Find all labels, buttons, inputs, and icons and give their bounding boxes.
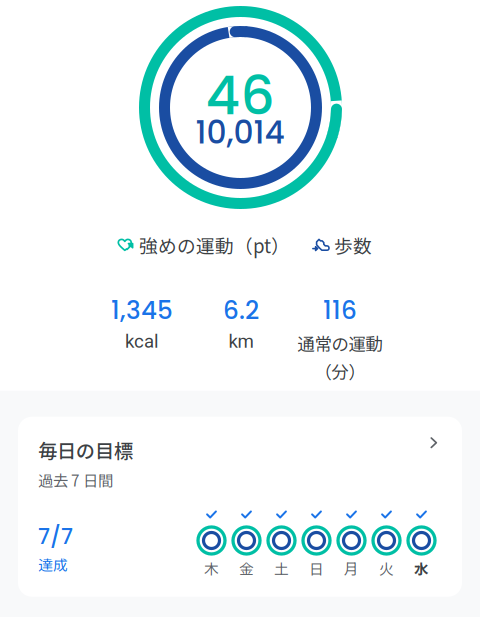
staticText: 6.2: [223, 293, 259, 327]
staticText: 水: [414, 557, 429, 579]
staticText: 土: [274, 557, 289, 579]
staticText: （分）: [314, 359, 365, 384]
staticText: 火: [379, 557, 394, 579]
staticText: kcal: [125, 330, 159, 352]
staticText: 月: [344, 557, 359, 579]
button[interactable]: 歩数: [312, 231, 372, 258]
staticText: 木: [204, 557, 219, 579]
staticText: 過去 7 日間: [38, 469, 113, 491]
staticText: 1,345: [111, 293, 173, 327]
staticText: 強めの運動（pt）: [139, 231, 290, 258]
staticText: 金: [239, 557, 254, 579]
staticText: 10,014: [195, 111, 284, 154]
staticText: 歩数: [334, 231, 372, 258]
staticText: 達成: [38, 553, 68, 575]
staticText: 日: [309, 557, 324, 579]
staticText: km: [228, 330, 253, 352]
staticText: 46: [205, 58, 274, 133]
staticText: 116: [323, 293, 357, 327]
staticText: 7/7: [38, 522, 73, 551]
button[interactable]: 強めの運動（pt）: [117, 231, 290, 258]
staticText: 毎日の目標: [38, 436, 133, 464]
button[interactable]: 毎日の目標: [18, 417, 462, 597]
staticText: 通常の運動: [297, 330, 382, 356]
